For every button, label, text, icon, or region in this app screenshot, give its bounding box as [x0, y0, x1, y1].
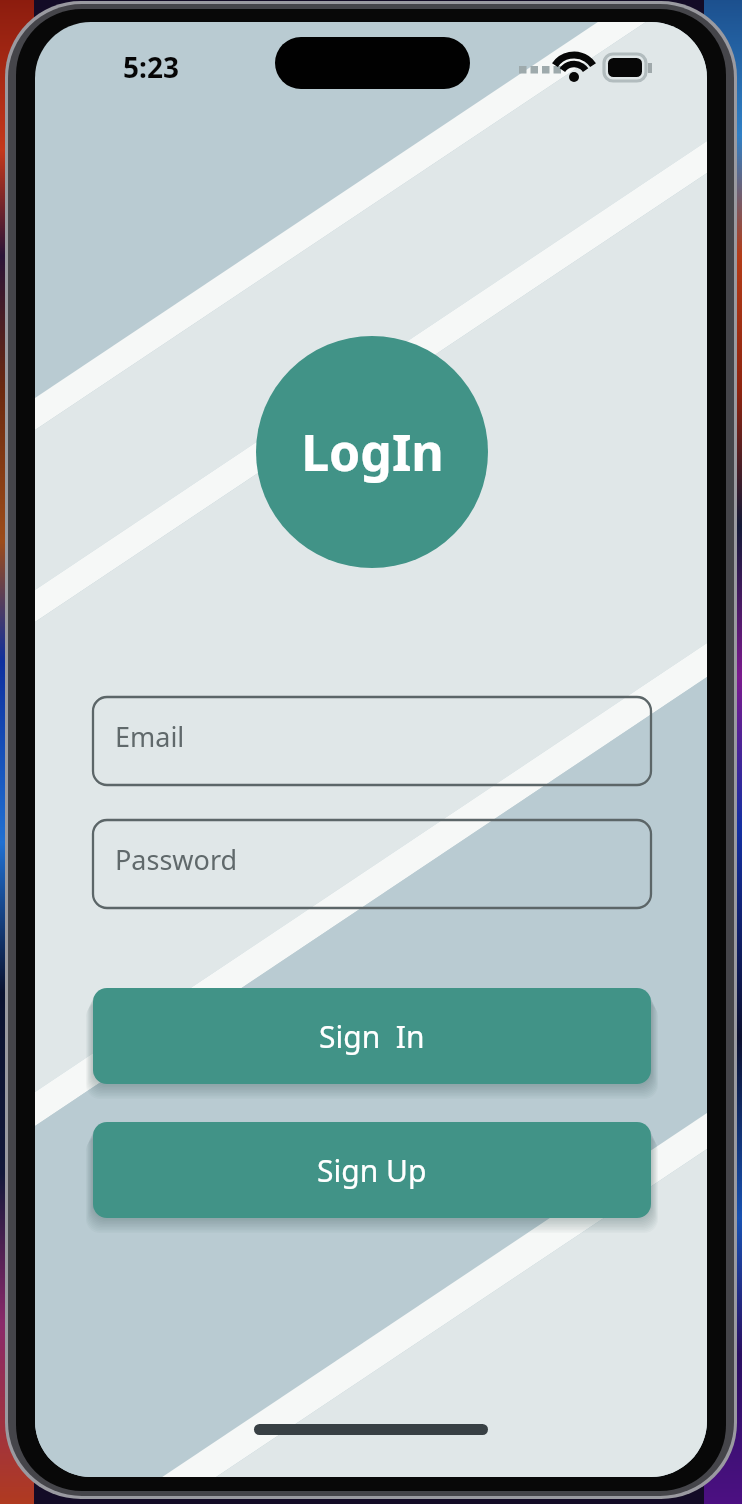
button[interactable]: Email: [93, 697, 651, 785]
button[interactable]: LogIn: [256, 336, 488, 568]
staticText: Password: [115, 841, 238, 878]
staticText: Email: [115, 718, 185, 755]
staticText: 5:23: [123, 48, 179, 82]
button[interactable]: Password: [93, 820, 651, 908]
staticText: Sign In: [319, 1016, 425, 1057]
staticText: LogIn: [301, 418, 444, 486]
button[interactable]: Sign Up: [93, 1122, 651, 1218]
staticText: Sign Up: [317, 1150, 427, 1191]
button[interactable]: Sign In: [93, 988, 651, 1084]
